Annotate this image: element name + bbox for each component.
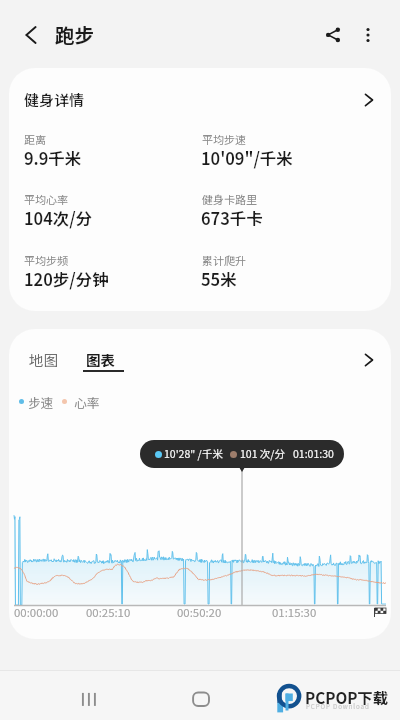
staticText: 101 次/分 [240,446,285,461]
button[interactable]: Home [177,675,225,720]
staticText: 距离 [24,131,46,147]
button[interactable]: 健身详情 [9,68,391,130]
staticText: 673千卡 [201,206,263,230]
button[interactable]: More options [350,17,386,53]
staticText: 平均步频 [24,252,68,268]
staticText: 地图 [29,349,58,370]
staticText: 健身卡路里 [202,191,257,207]
staticText: PCPOP Download [306,702,370,711]
staticText: 01:01:30 [293,446,334,461]
staticText: 图表 [86,349,115,370]
staticText: 104次/分 [24,206,93,230]
button[interactable]: Open chart [357,343,391,381]
staticText: 跑步 [55,20,95,48]
staticText: 01:15:30 [272,604,317,621]
staticText: 9.9千米 [24,146,82,170]
button[interactable]: Back [13,17,49,53]
staticText: 120步/分钟 [24,267,109,291]
button[interactable]: Recent apps [65,675,113,720]
button[interactable]: 地图 [24,343,70,373]
staticText: 健身详情 [24,89,85,111]
staticText: 00:50:20 [177,604,222,621]
staticText: 10'28" /千米 [164,446,223,461]
staticText: 55米 [201,267,237,291]
staticText: 步速 [28,393,54,411]
button[interactable]: 图表 [81,343,128,373]
staticText: 00:00:00 [14,604,59,621]
staticText: 平均心率 [24,191,68,207]
staticText: 平均步速 [202,131,246,147]
staticText: 10'09"/千米 [201,146,293,170]
staticText: PCPOP下载 [305,686,389,708]
staticText: 累计爬升 [202,252,246,268]
staticText: 00:25:10 [86,604,131,621]
staticText: 心率 [74,393,100,411]
button[interactable]: Share [315,17,351,53]
